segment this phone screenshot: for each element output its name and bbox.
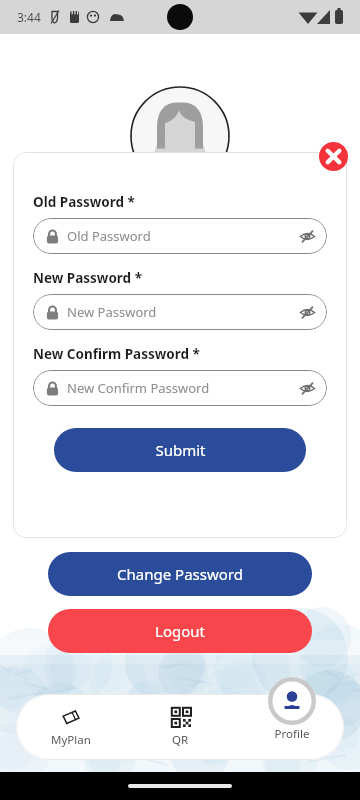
staticText: Submit (155, 440, 206, 460)
button[interactable]: Show password (297, 302, 317, 322)
button[interactable]: Show password (297, 226, 317, 246)
staticText: Profile (268, 726, 316, 742)
button[interactable]: Close (319, 142, 348, 171)
button[interactable]: MyPlan (16, 701, 126, 754)
staticText: QR (172, 732, 189, 748)
staticText: MyPlan (51, 732, 91, 748)
button[interactable]: Show password (297, 378, 317, 398)
button[interactable]: Profile (268, 677, 316, 725)
button[interactable]: Change Password (48, 552, 312, 596)
staticText: New Confirm Password * (33, 345, 200, 363)
button[interactable]: New Confirm Password (33, 370, 327, 406)
button[interactable]: QR (126, 701, 235, 754)
staticText: Change Password (117, 564, 243, 584)
staticText: 3:44 (17, 9, 41, 25)
button[interactable]: Logout (48, 609, 312, 653)
staticText: New Password (67, 303, 297, 321)
button[interactable]: Old Password (33, 218, 327, 254)
staticText: New Confirm Password (67, 379, 297, 397)
button[interactable]: New Password (33, 294, 327, 330)
staticText: New Password * (33, 269, 142, 287)
button[interactable]: Submit (54, 428, 306, 472)
staticText: Old Password (67, 227, 297, 245)
staticText: Logout (155, 621, 205, 641)
staticText: Old Password * (33, 193, 135, 211)
